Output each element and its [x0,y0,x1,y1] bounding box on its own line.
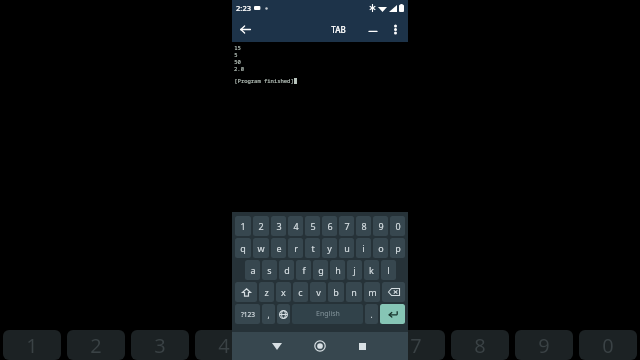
staticText: z [264,286,269,298]
staticText: TAB [331,24,346,35]
button[interactable]: , [262,304,275,324]
button[interactable]: n [346,282,362,302]
button[interactable]: d [279,260,294,280]
button[interactable]: b [328,282,344,302]
staticText: d [284,264,290,276]
staticText: b [333,286,339,298]
button[interactable]: 5 [305,216,320,236]
button[interactable]: English [292,304,363,324]
staticText: t [311,242,315,254]
button[interactable]: u [339,238,354,258]
staticText: q [240,242,246,254]
staticText: 2 [90,332,102,359]
staticText: 50 [234,58,241,65]
staticText: 15 [234,44,241,51]
button[interactable]: 7 [339,216,354,236]
button[interactable]: More options [384,18,406,40]
staticText: a [250,264,256,276]
button[interactable]: f [296,260,311,280]
button[interactable]: TAB [331,24,346,35]
button[interactable]: a [245,260,260,280]
staticText: 7 [344,220,350,232]
button[interactable]: ?123 [235,304,260,324]
staticText: s [267,264,272,276]
button[interactable]: Backspace [382,282,405,302]
button[interactable]: x [276,282,291,302]
staticText: . [370,309,373,320]
staticText: 5 [310,220,316,232]
staticText: 0 [395,220,401,232]
staticText: c [298,286,303,298]
button[interactable]: Minimize [362,18,384,40]
button[interactable]: p [390,238,405,258]
button[interactable]: Hide keyboard [255,332,298,360]
button[interactable]: Recent apps [341,332,384,360]
staticText: 2.0 [234,65,244,72]
staticText: 2:23 [236,3,251,13]
staticText: 4 [293,220,299,232]
button[interactable]: s [262,260,277,280]
staticText: [Program finished] [234,77,294,84]
button[interactable]: Change language [277,304,290,324]
staticText: g [318,264,324,276]
button[interactable]: 1 [235,216,251,236]
staticText: 5 [234,51,238,58]
button[interactable]: Shift [235,282,257,302]
staticText: j [353,264,356,276]
staticText: v [316,286,321,298]
button[interactable]: j [347,260,362,280]
button[interactable]: h [330,260,345,280]
button[interactable]: g [313,260,328,280]
staticText: i [362,242,365,254]
button[interactable]: q [235,238,251,258]
button[interactable]: Enter [380,304,405,324]
staticText: h [335,264,341,276]
button[interactable]: k [364,260,379,280]
button[interactable]: l [381,260,396,280]
button[interactable]: c [293,282,308,302]
button[interactable]: w [253,238,269,258]
button[interactable]: r [288,238,303,258]
staticText: 0 [602,332,614,359]
button[interactable]: 3 [271,216,286,236]
button[interactable]: . [365,304,378,324]
button[interactable]: i [356,238,371,258]
staticText: f [302,264,306,276]
staticText: 8 [474,332,486,359]
staticText: w [257,242,265,254]
button[interactable]: 6 [322,216,337,236]
button[interactable]: o [373,238,388,258]
button[interactable]: 2 [253,216,269,236]
staticText: ?123 [241,310,255,319]
button[interactable]: 4 [288,216,303,236]
button[interactable]: t [305,238,320,258]
button[interactable]: 8 [356,216,371,236]
button[interactable]: y [322,238,337,258]
button[interactable]: Back [232,16,258,42]
staticText: 2 [258,220,264,232]
staticText: e [276,242,282,254]
staticText: 3 [154,332,166,359]
staticText: 1 [240,220,246,232]
staticText: p [395,242,401,254]
button[interactable]: e [271,238,286,258]
staticText: y [327,242,332,254]
staticText: m [368,286,377,298]
staticText: 3 [276,220,282,232]
staticText: 8 [361,220,367,232]
button[interactable]: m [364,282,380,302]
staticText: 7 [410,332,422,359]
staticText: 9 [378,220,384,232]
staticText: r [294,242,298,254]
staticText: English [316,309,340,319]
staticText: o [378,242,384,254]
staticText: 6 [327,220,333,232]
staticText: 1 [26,332,38,359]
button[interactable]: 0 [390,216,405,236]
button[interactable]: v [310,282,326,302]
button[interactable]: Home [298,332,341,360]
button[interactable]: 9 [373,216,388,236]
button[interactable]: z [259,282,274,302]
